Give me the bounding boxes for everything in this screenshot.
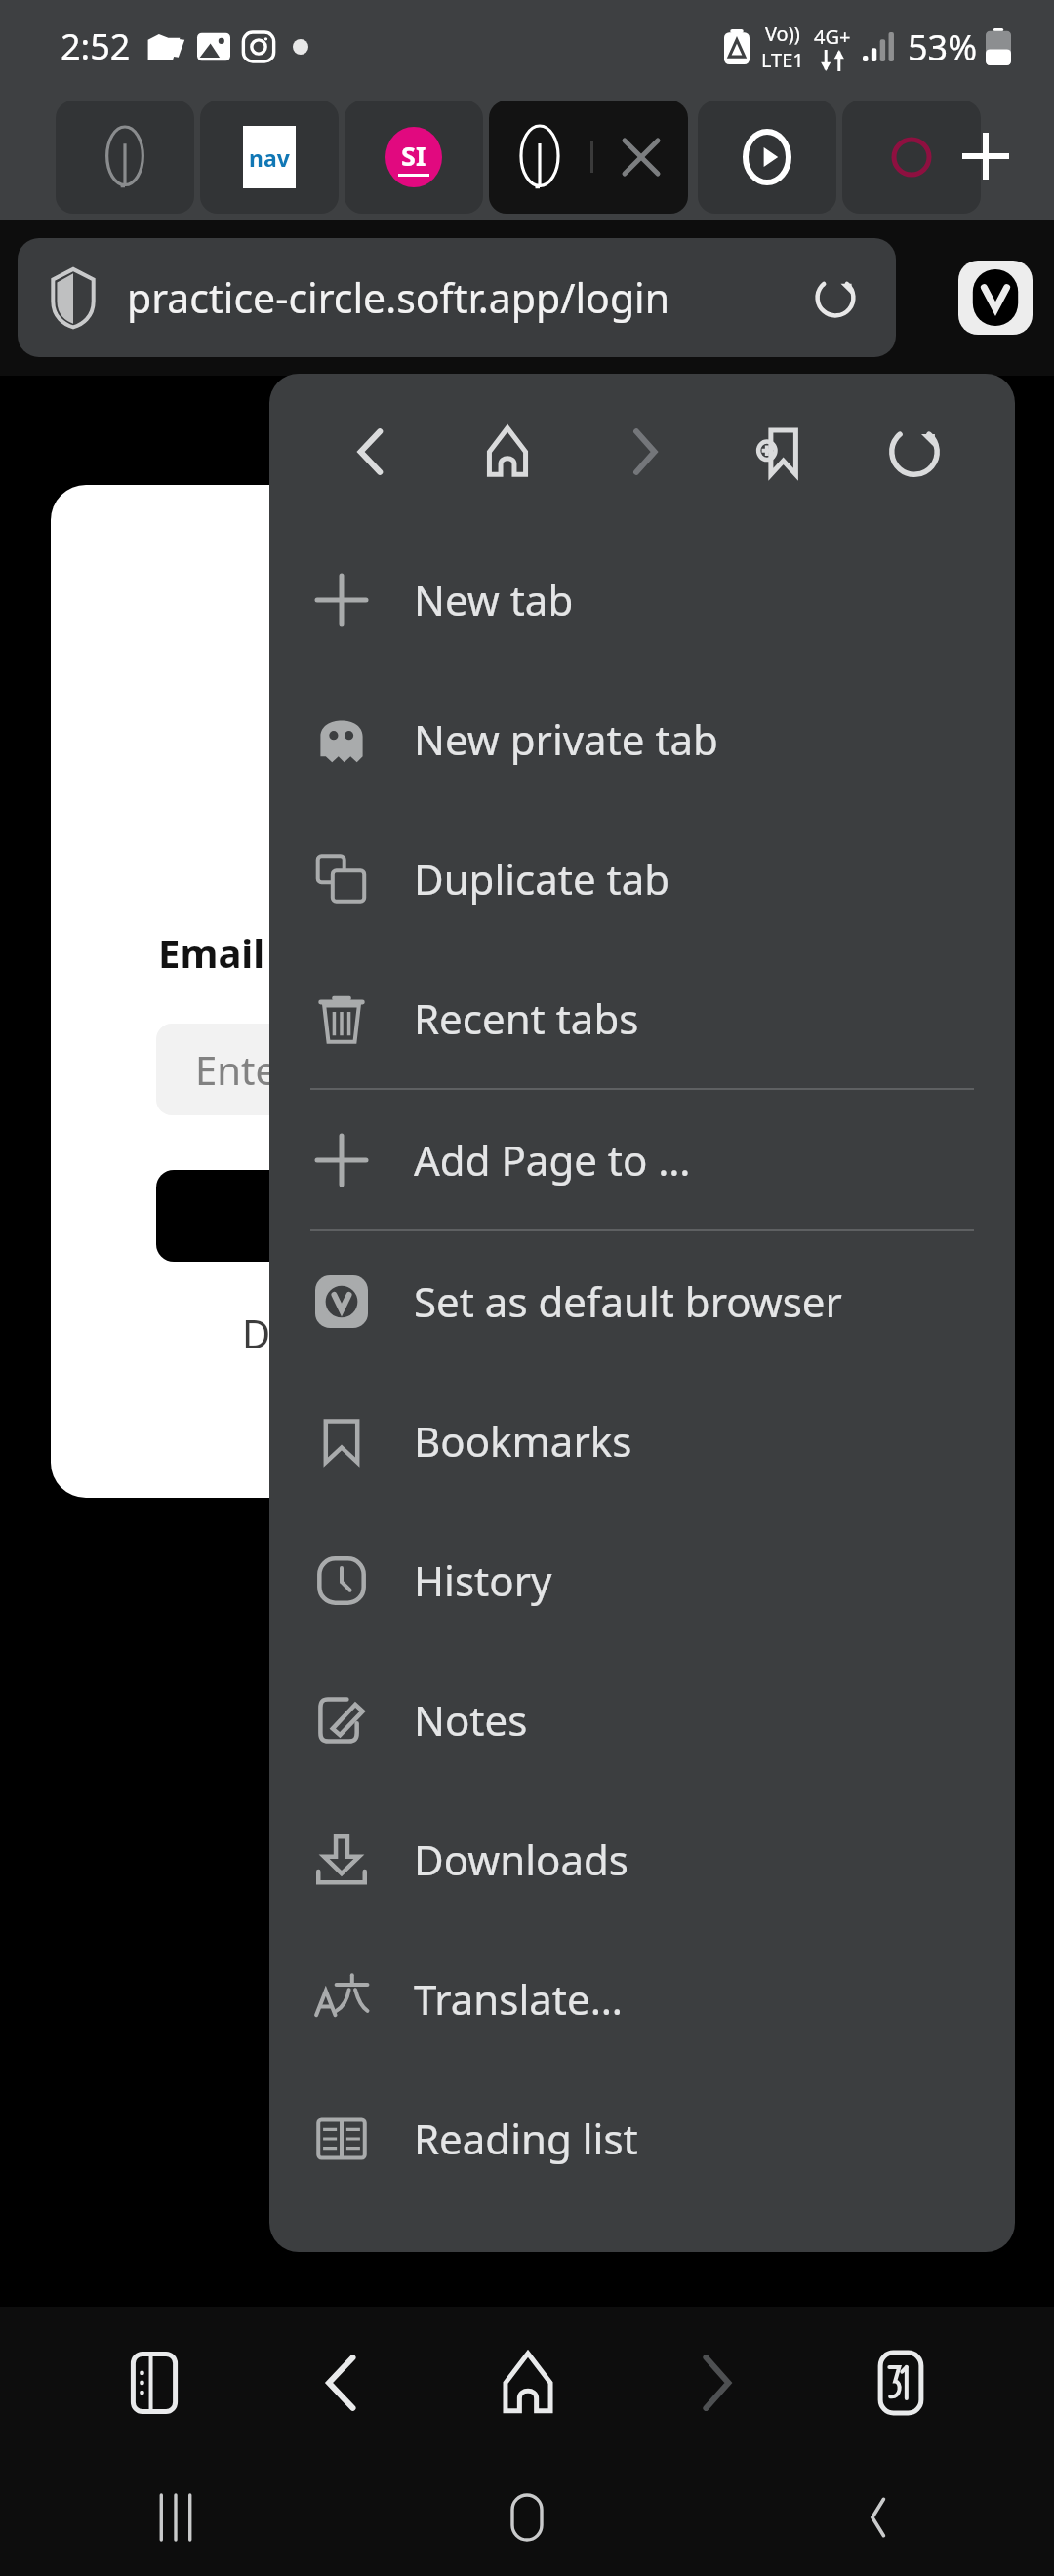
button[interactable]: New private tab bbox=[269, 669, 1015, 809]
staticText: LTE1 bbox=[761, 47, 804, 73]
button[interactable]: Tab bbox=[56, 101, 194, 214]
button[interactable]: practice-circle.softr.app/login bbox=[18, 238, 896, 357]
button[interactable]: Forward bbox=[575, 374, 710, 530]
staticText: Notes bbox=[414, 1692, 528, 1748]
staticText: 2:52 bbox=[61, 22, 131, 70]
button[interactable]: Bookmarks bbox=[269, 1371, 1015, 1510]
button[interactable]: Reload bbox=[846, 374, 982, 530]
button[interactable]: Home bbox=[439, 374, 575, 530]
staticText: Translate… bbox=[414, 1971, 623, 2027]
button[interactable]: Add Page to … bbox=[269, 1090, 1015, 1229]
button[interactable]: History bbox=[269, 1510, 1015, 1650]
staticText: nav bbox=[249, 142, 290, 173]
button[interactable]: Set as default browser bbox=[269, 1231, 1015, 1371]
staticText: 53% bbox=[908, 23, 978, 71]
button[interactable]: Home bbox=[434, 2307, 621, 2458]
button[interactable]: Tabs, 31 open bbox=[807, 2307, 993, 2458]
button[interactable]: New tab bbox=[269, 530, 1015, 669]
staticText: New tab bbox=[414, 572, 574, 627]
button[interactable]: Current tab bbox=[489, 101, 688, 214]
staticText: Set as default browser bbox=[414, 1273, 842, 1329]
button[interactable]: Add bookmark bbox=[710, 374, 846, 530]
button[interactable]: Back bbox=[248, 2307, 434, 2458]
staticText: Vo)) bbox=[765, 20, 800, 47]
staticText: Don bbox=[242, 1307, 319, 1359]
button[interactable]: Panels bbox=[61, 2307, 248, 2458]
button[interactable]: Recents bbox=[0, 2458, 351, 2576]
button[interactable]: Reload bbox=[800, 262, 871, 333]
staticText: Email * bbox=[158, 926, 297, 979]
staticText: practice-circle.softr.app/login bbox=[127, 270, 670, 325]
staticText: History bbox=[414, 1552, 552, 1608]
staticText: 4G+ bbox=[814, 23, 851, 50]
button[interactable]: Translate… bbox=[269, 1929, 1015, 2069]
button[interactable]: Back bbox=[303, 374, 439, 530]
button[interactable]: Home bbox=[351, 2458, 703, 2576]
button[interactable]: Back bbox=[703, 2458, 1054, 2576]
button[interactable]: Tab bbox=[698, 101, 836, 214]
staticText: Enter bbox=[195, 1043, 294, 1096]
button[interactable]: Tab bbox=[842, 101, 981, 214]
button[interactable]: Notes bbox=[269, 1650, 1015, 1790]
staticText: New private tab bbox=[414, 711, 718, 767]
staticText: Duplicate tab bbox=[414, 851, 670, 906]
staticText: Recent tabs bbox=[414, 990, 639, 1046]
button[interactable]: Close tab bbox=[614, 130, 669, 184]
staticText: Add Page to … bbox=[414, 1132, 691, 1187]
staticText: Bookmarks bbox=[414, 1413, 632, 1469]
button[interactable]: Downloads bbox=[269, 1790, 1015, 1929]
staticText: SI bbox=[401, 138, 426, 174]
button[interactable]: Forward bbox=[621, 2307, 807, 2458]
button[interactable]: Enter bbox=[156, 1024, 519, 1115]
button[interactable] bbox=[156, 1170, 519, 1262]
staticText: Downloads bbox=[414, 1831, 628, 1887]
button[interactable]: Tab bbox=[200, 101, 339, 214]
button[interactable]: New tab bbox=[932, 93, 1039, 220]
button[interactable]: Duplicate tab bbox=[269, 809, 1015, 948]
button[interactable]: Reading list bbox=[269, 2069, 1015, 2208]
staticText: Reading list bbox=[414, 2111, 638, 2166]
button[interactable]: Tab bbox=[345, 101, 483, 214]
button[interactable]: Vivaldi menu bbox=[958, 261, 1033, 335]
button[interactable]: Recent tabs bbox=[269, 948, 1015, 1088]
